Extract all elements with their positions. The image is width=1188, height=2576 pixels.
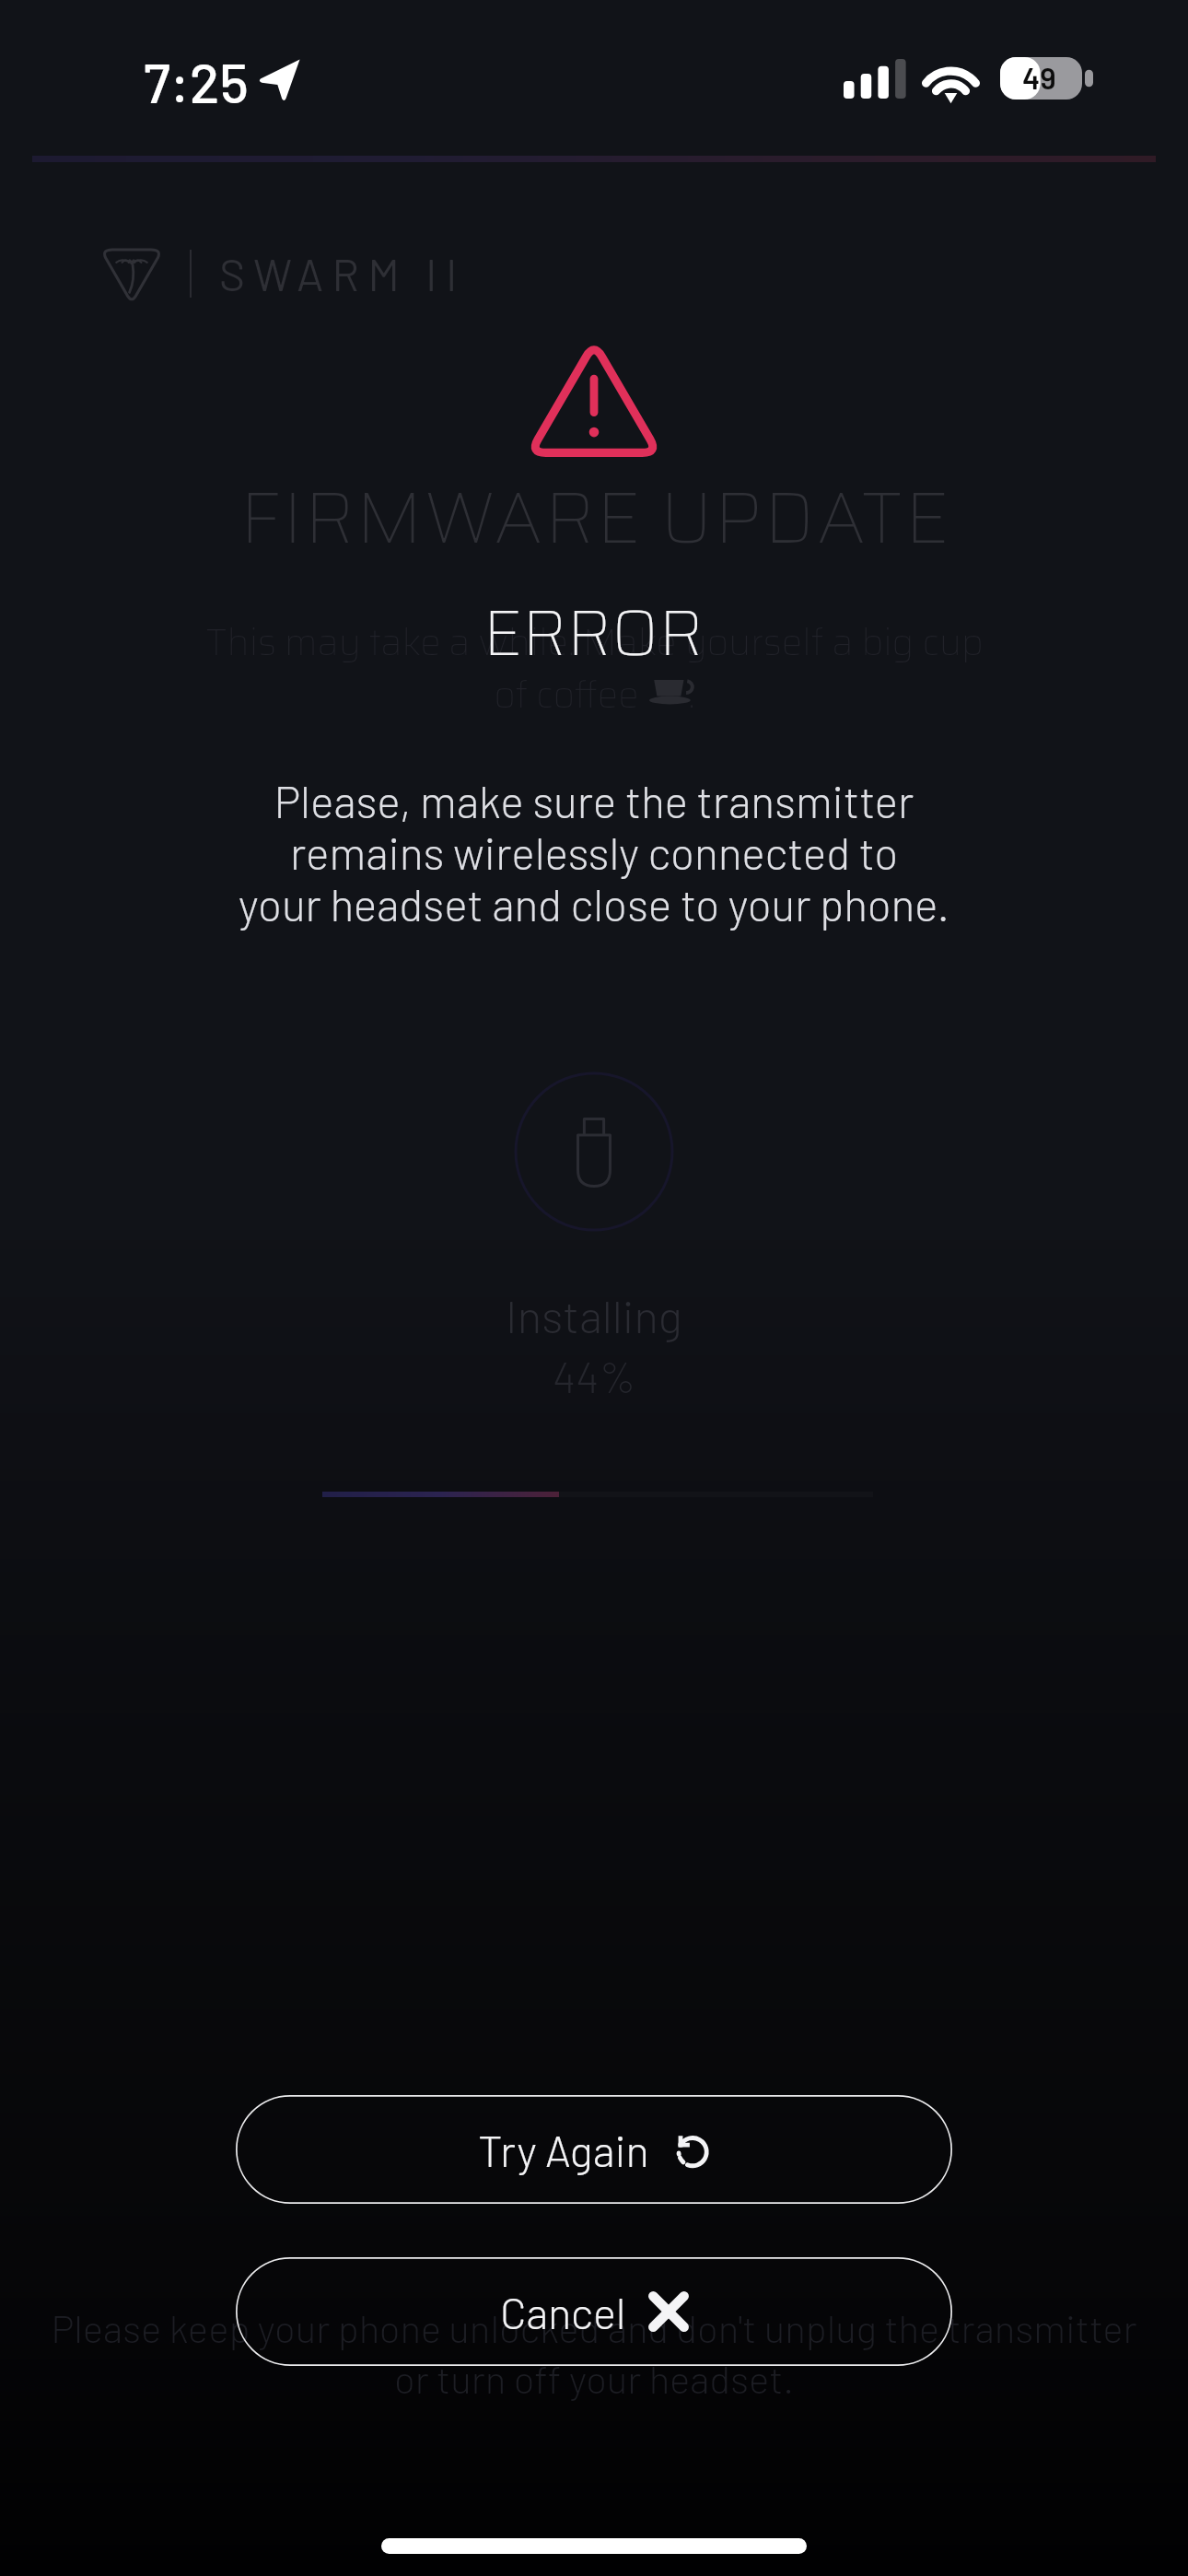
other: Try again [671,2129,710,2170]
staticText: Cancel [500,2286,626,2337]
button[interactable]: Try Again [236,2095,952,2204]
other: Cancel [648,2291,689,2332]
staticText: 49 [1022,59,1056,96]
staticText: Please keep your phone unlocked and don'… [51,2304,1137,2401]
staticText: ERROR [483,583,705,684]
staticText: FIRMWARE UPDATE [240,461,951,574]
staticText: SWARM II [219,247,466,300]
staticText: This may take a while. Make yourself a b… [205,614,984,724]
staticText: 7:25 [144,48,249,114]
staticText: 44% [553,1350,636,1401]
staticText: Installing [506,1288,682,1342]
staticText: Try Again [478,2124,649,2175]
button[interactable]: Cancel [236,2257,952,2366]
staticText: Please, make sure the transmitter remain… [239,774,949,930]
